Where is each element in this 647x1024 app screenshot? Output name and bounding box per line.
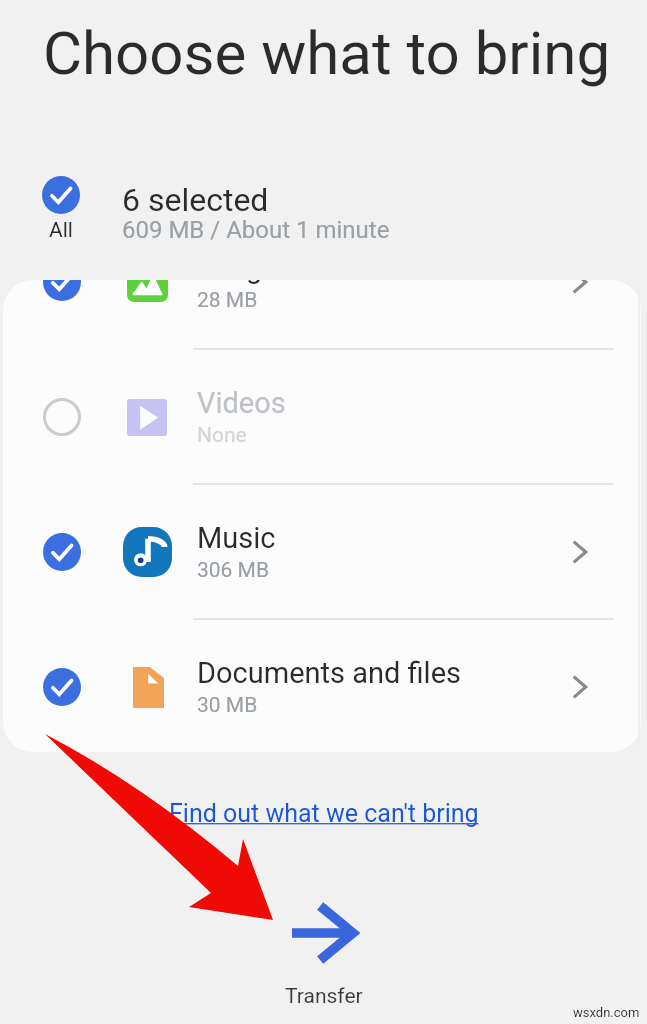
staticText: 609 MB / About 1 minute (122, 216, 390, 244)
staticText: All (49, 218, 73, 243)
button[interactable]: All (0, 181, 647, 248)
staticText: Music (197, 521, 276, 555)
button[interactable]: Music (3, 485, 641, 618)
staticText: Images (197, 280, 293, 285)
staticText: wsxdn.com (573, 1005, 640, 1020)
button[interactable]: Videos (3, 350, 641, 483)
other: Open Images (567, 280, 593, 295)
button[interactable]: Find out what we can't bring (169, 799, 479, 828)
button[interactable]: Transfer (0, 903, 647, 1009)
button[interactable]: Documents and files (3, 620, 641, 752)
staticText: Choose what to bring (43, 18, 611, 88)
staticText: 6 selected (122, 181, 269, 219)
staticText: 30 MB (197, 693, 258, 718)
staticText: Videos (197, 386, 286, 420)
staticText: Transfer (285, 984, 363, 1009)
other: Open Documents and files (567, 674, 593, 700)
staticText: 306 MB (197, 558, 270, 583)
staticText: None (197, 423, 247, 448)
staticText: 28 MB (197, 288, 258, 313)
staticText: Documents and files (197, 656, 462, 690)
button[interactable]: Images (3, 280, 641, 348)
other: Open Music (567, 539, 593, 565)
